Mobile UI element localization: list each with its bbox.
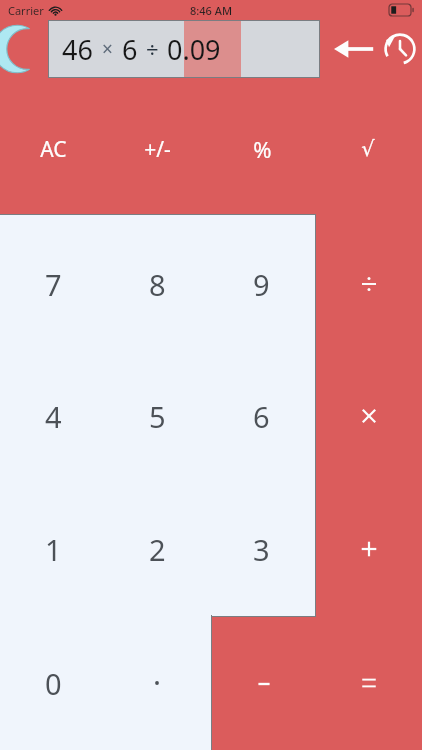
button[interactable]: History: [378, 23, 422, 75]
button[interactable]: %: [212, 116, 312, 182]
staticText: 8:46 AM: [190, 3, 233, 18]
staticText: 4: [45, 397, 62, 436]
staticText: 7: [45, 265, 62, 304]
button[interactable]: +/-: [107, 116, 207, 182]
staticText: 46: [62, 31, 93, 68]
button[interactable]: 46: [49, 21, 319, 77]
button[interactable]: Minus: [211, 617, 316, 750]
button[interactable]: Night mode: [2, 22, 40, 76]
button[interactable]: 3: [209, 483, 313, 615]
button[interactable]: Multiply: [316, 350, 422, 482]
button[interactable]: 5: [105, 350, 209, 482]
staticText: ÷: [146, 34, 159, 64]
staticText: Carrier: [8, 3, 44, 18]
button[interactable]: 4: [1, 350, 105, 482]
button[interactable]: 7: [1, 218, 105, 350]
button[interactable]: 2: [105, 483, 209, 615]
button[interactable]: Divide: [316, 218, 422, 350]
button[interactable]: Equals: [316, 617, 422, 749]
staticText: 8: [149, 265, 166, 304]
button[interactable]: √: [318, 116, 418, 182]
staticText: √: [361, 137, 375, 161]
staticText: AC: [40, 135, 67, 164]
staticText: 0: [45, 664, 62, 703]
staticText: 9: [253, 265, 270, 304]
button[interactable]: 8: [105, 218, 209, 350]
button[interactable]: Backspace: [330, 27, 378, 71]
staticText: 0.09: [167, 31, 221, 68]
staticText: 2: [149, 530, 166, 569]
button[interactable]: Add: [316, 483, 422, 615]
button[interactable]: 0: [1, 617, 105, 749]
staticText: 3: [253, 530, 270, 569]
staticText: %: [253, 134, 272, 164]
staticText: 6: [253, 397, 270, 436]
button[interactable]: AC: [3, 116, 103, 182]
button[interactable]: 9: [209, 218, 313, 350]
button[interactable]: 1: [1, 483, 105, 615]
button[interactable]: [105, 617, 209, 749]
staticText: +/-: [144, 135, 171, 164]
staticText: 6: [122, 31, 138, 68]
button[interactable]: 6: [209, 350, 313, 482]
staticText: ×: [102, 36, 113, 62]
staticText: 5: [149, 397, 166, 436]
staticText: 1: [45, 530, 62, 569]
